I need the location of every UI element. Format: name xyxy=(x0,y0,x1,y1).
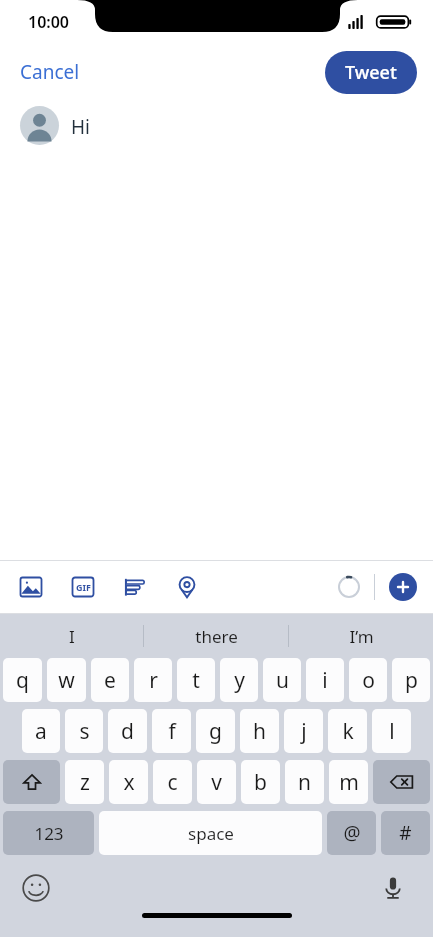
button[interactable]: # xyxy=(381,811,430,855)
staticText: z xyxy=(80,768,90,797)
staticText: space xyxy=(188,822,234,845)
button[interactable]: k xyxy=(328,709,367,753)
staticText: b xyxy=(254,768,267,797)
button[interactable]: @ xyxy=(327,811,376,855)
button[interactable]: n xyxy=(285,760,324,804)
staticText: there xyxy=(195,625,238,648)
staticText: Cancel xyxy=(20,59,80,85)
button[interactable]: I xyxy=(0,614,143,658)
staticText: r xyxy=(149,666,158,695)
staticText: d xyxy=(121,717,134,746)
staticText: l xyxy=(389,717,395,746)
button[interactable]: Add location xyxy=(170,570,204,604)
staticText: o xyxy=(362,666,375,695)
button[interactable]: l xyxy=(372,709,411,753)
button[interactable]: Tweet xyxy=(325,51,417,94)
button[interactable]: j xyxy=(284,709,323,753)
staticText: q xyxy=(16,666,29,695)
staticText: x xyxy=(123,768,135,797)
button[interactable]: i xyxy=(306,658,344,702)
button[interactable]: I’m xyxy=(289,614,433,658)
button[interactable]: Add GIF xyxy=(66,570,100,604)
button[interactable]: Backspace xyxy=(373,760,430,804)
button[interactable]: 123 xyxy=(3,811,94,855)
button[interactable]: r xyxy=(134,658,172,702)
button[interactable]: w xyxy=(47,658,86,702)
staticText: p xyxy=(405,666,418,695)
staticText: Tweet xyxy=(345,60,397,85)
staticText: f xyxy=(168,717,176,746)
button[interactable]: m xyxy=(329,760,368,804)
staticText: u xyxy=(276,666,289,695)
staticText: i xyxy=(322,666,328,695)
button[interactable]: Cancel xyxy=(0,49,100,95)
staticText: g xyxy=(209,717,222,746)
button[interactable]: b xyxy=(241,760,280,804)
staticText: 10:00 xyxy=(28,11,70,33)
button[interactable]: Shift xyxy=(3,760,60,804)
staticText: s xyxy=(79,717,90,746)
button[interactable]: f xyxy=(152,709,191,753)
button[interactable]: u xyxy=(263,658,301,702)
staticText: n xyxy=(298,768,311,797)
staticText: w xyxy=(58,666,75,695)
button[interactable]: Emoji xyxy=(20,872,52,904)
button[interactable]: Add poll xyxy=(118,570,152,604)
button[interactable]: o xyxy=(349,658,387,702)
staticText: t xyxy=(192,666,200,695)
button[interactable]: z xyxy=(65,760,104,804)
staticText: c xyxy=(167,768,178,797)
staticText: y xyxy=(234,666,245,695)
staticText: GIF xyxy=(76,581,91,593)
staticText: I xyxy=(69,625,75,648)
staticText: I’m xyxy=(349,625,374,648)
staticText: # xyxy=(399,820,412,846)
staticText: a xyxy=(35,717,47,746)
staticText: j xyxy=(301,717,307,746)
button[interactable]: h xyxy=(240,709,279,753)
button[interactable]: x xyxy=(109,760,148,804)
button[interactable]: Add photo xyxy=(14,570,48,604)
button[interactable]: e xyxy=(91,658,129,702)
button[interactable]: v xyxy=(197,760,236,804)
button[interactable]: y xyxy=(220,658,258,702)
button[interactable]: s xyxy=(65,709,103,753)
button[interactable]: c xyxy=(153,760,192,804)
button[interactable]: space xyxy=(99,811,322,855)
staticText: 123 xyxy=(34,822,64,845)
staticText: @ xyxy=(343,820,361,846)
button[interactable]: t xyxy=(177,658,215,702)
button[interactable]: a xyxy=(22,709,60,753)
button[interactable]: q xyxy=(3,658,42,702)
button[interactable]: Add tweet xyxy=(389,573,417,601)
button[interactable]: g xyxy=(196,709,235,753)
staticText: k xyxy=(342,717,354,746)
button[interactable]: Dictate xyxy=(377,872,409,904)
staticText: v xyxy=(211,768,222,797)
button[interactable]: d xyxy=(108,709,147,753)
button[interactable]: p xyxy=(392,658,430,702)
button[interactable]: there xyxy=(144,614,288,658)
staticText: m xyxy=(339,768,359,797)
staticText: Hi xyxy=(71,114,90,140)
staticText: e xyxy=(104,666,116,695)
staticText: h xyxy=(253,717,266,746)
